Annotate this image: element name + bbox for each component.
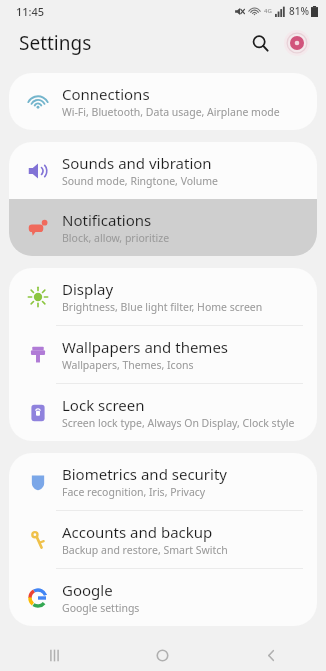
button[interactable]: Back (217, 640, 326, 671)
button[interactable]: Wallpapers and themes (9, 326, 317, 383)
staticText: Accounts and backup (62, 522, 213, 542)
staticText: Wallpapers and themes (62, 337, 229, 357)
staticText: Sounds and vibration (62, 153, 212, 173)
button[interactable]: Search (244, 27, 276, 59)
staticText: 11:45 (16, 4, 45, 19)
staticText: Backup and restore, Smart Switch (62, 543, 228, 557)
staticText: Lock screen (62, 395, 145, 415)
button[interactable]: Notifications (9, 199, 317, 256)
staticText: Google (62, 580, 113, 600)
button[interactable]: Google (9, 569, 317, 626)
button[interactable]: Sounds and vibration (9, 142, 317, 199)
staticText: Block, allow, prioritize (62, 231, 170, 245)
staticText: Connections (62, 84, 150, 104)
button[interactable]: Biometrics and security (9, 453, 317, 510)
button[interactable]: Connections (9, 73, 317, 130)
button[interactable]: Lock screen (9, 384, 317, 441)
staticText: Display (62, 279, 114, 299)
button[interactable]: Display (9, 268, 317, 325)
staticText: 81% (289, 4, 309, 18)
staticText: Biometrics and security (62, 464, 228, 484)
staticText: Brightness, Blue light filter, Home scre… (62, 300, 263, 314)
staticText: 4G (264, 7, 272, 15)
staticText: Face recognition, Iris, Privacy (62, 485, 206, 499)
staticText: Settings (19, 30, 92, 56)
staticText: Notifications (62, 210, 152, 230)
button[interactable]: Recents (0, 640, 108, 671)
staticText: Wi-Fi, Bluetooth, Data usage, Airplane m… (62, 105, 280, 119)
staticText: Google settings (62, 601, 140, 615)
staticText: Wallpapers, Themes, Icons (62, 358, 194, 372)
staticText: Sound mode, Ringtone, Volume (62, 174, 219, 188)
button[interactable]: Accounts and backup (9, 511, 317, 568)
button[interactable]: Home (108, 640, 217, 671)
button[interactable]: Profile (282, 28, 312, 58)
staticText: Screen lock type, Always On Display, Clo… (62, 416, 295, 430)
